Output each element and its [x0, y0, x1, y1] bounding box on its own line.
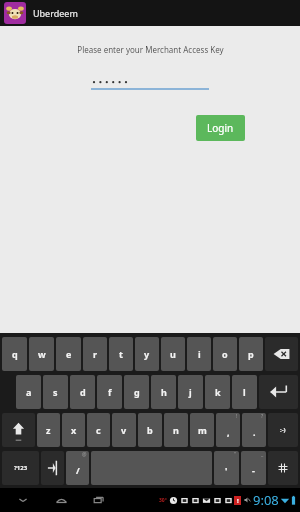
- button[interactable]: @: [66, 451, 89, 485]
- staticText: ': [225, 464, 228, 476]
- button[interactable]: a: [16, 375, 41, 409]
- staticText: z: [46, 424, 51, 436]
- staticText: a: [26, 386, 32, 398]
- staticText: Login: [207, 121, 234, 135]
- button[interactable]: _: [241, 451, 266, 485]
- button[interactable]: !: [216, 413, 240, 447]
- staticText: h: [161, 386, 167, 398]
- button[interactable]: s: [43, 375, 68, 409]
- staticText: c: [96, 424, 101, 436]
- staticText: l: [243, 386, 246, 398]
- button[interactable]: Enter: [259, 375, 298, 409]
- staticText: t: [119, 348, 123, 360]
- staticText: /: [76, 464, 80, 476]
- staticText: r: [93, 348, 98, 360]
- staticText: k: [215, 386, 221, 398]
- button[interactable]: Login: [196, 115, 245, 141]
- staticText: q: [12, 348, 18, 360]
- staticText: s: [53, 386, 58, 398]
- button[interactable]: j: [178, 375, 203, 409]
- staticText: j: [189, 386, 192, 398]
- button[interactable]: ?123: [2, 451, 39, 485]
- button[interactable]: :-): [268, 413, 298, 447]
- button[interactable]: [91, 75, 209, 90]
- staticText: n: [173, 424, 179, 436]
- button[interactable]: t: [109, 337, 133, 371]
- button[interactable]: m: [190, 413, 214, 447]
- button[interactable]: y: [135, 337, 159, 371]
- staticText: ,: [227, 426, 230, 438]
- button[interactable]: n: [164, 413, 188, 447]
- button[interactable]: c: [87, 413, 110, 447]
- button[interactable]: Keyboard settings: [268, 451, 298, 485]
- staticText: p: [248, 348, 254, 360]
- button[interactable]: r: [83, 337, 107, 371]
- staticText: 30°: [159, 497, 167, 504]
- staticText: u: [170, 348, 176, 360]
- staticText: f: [108, 386, 112, 398]
- button[interactable]: i: [187, 337, 211, 371]
- button[interactable]: ": [214, 451, 239, 485]
- staticText: :-): [280, 426, 286, 434]
- button[interactable]: o: [213, 337, 237, 371]
- button[interactable]: p: [239, 337, 263, 371]
- staticText: 9:08: [253, 491, 279, 509]
- staticText: _: [261, 451, 264, 458]
- button[interactable]: Shift: [2, 413, 35, 447]
- button[interactable]: Uberdeem app icon: [4, 2, 26, 24]
- staticText: e: [66, 348, 72, 360]
- staticText: @: [82, 451, 87, 458]
- button[interactable]: Backspace: [265, 337, 298, 371]
- button[interactable]: z: [37, 413, 60, 447]
- staticText: Please enter your Merchant Access Key: [77, 44, 224, 55]
- staticText: v: [121, 424, 127, 436]
- staticText: o: [222, 348, 228, 360]
- staticText: b: [147, 424, 153, 436]
- staticText: w: [38, 348, 46, 360]
- button[interactable]: Back: [10, 489, 36, 511]
- button[interactable]: h: [151, 375, 176, 409]
- button[interactable]: v: [112, 413, 136, 447]
- button[interactable]: Home: [48, 489, 74, 511]
- staticText: y: [144, 348, 150, 360]
- staticText: i: [198, 348, 201, 360]
- button[interactable]: Tab: [41, 451, 64, 485]
- button[interactable]: Recent apps: [86, 489, 112, 511]
- staticText: d: [80, 386, 86, 398]
- button[interactable]: b: [138, 413, 162, 447]
- button[interactable]: d: [70, 375, 95, 409]
- button[interactable]: u: [161, 337, 185, 371]
- button[interactable]: w: [29, 337, 54, 371]
- button[interactable]: e: [56, 337, 81, 371]
- staticText: ?: [261, 413, 264, 420]
- button[interactable]: x: [62, 413, 85, 447]
- button[interactable]: g: [124, 375, 149, 409]
- staticText: ": [234, 451, 237, 458]
- staticText: x: [71, 424, 77, 436]
- staticText: .: [253, 426, 256, 438]
- button[interactable]: q: [2, 337, 27, 371]
- staticText: !: [237, 497, 239, 505]
- staticText: g: [134, 386, 140, 398]
- staticText: !: [236, 413, 238, 420]
- staticText: ?123: [14, 464, 28, 472]
- staticText: m: [198, 424, 207, 436]
- button[interactable]: l: [232, 375, 257, 409]
- button[interactable]: f: [97, 375, 122, 409]
- staticText: Uberdeem: [33, 7, 78, 19]
- button[interactable]: ?: [242, 413, 266, 447]
- staticText: -: [252, 464, 255, 476]
- button[interactable]: k: [205, 375, 230, 409]
